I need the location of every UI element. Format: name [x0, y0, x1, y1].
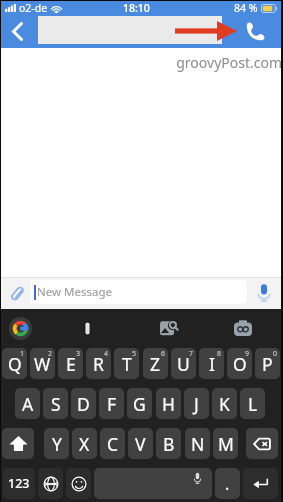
button[interactable]: M	[213, 428, 238, 459]
button[interactable]: W	[30, 348, 55, 379]
button[interactable]	[38, 16, 222, 44]
button[interactable]: K	[212, 388, 237, 419]
staticText: Z	[150, 352, 161, 376]
staticText: A	[22, 392, 34, 416]
staticText: X	[79, 432, 90, 456]
staticText: U	[177, 352, 190, 376]
staticText: 3	[76, 349, 81, 359]
button[interactable]: U	[171, 348, 196, 379]
staticText: 9	[245, 349, 250, 359]
button[interactable]: 123	[3, 468, 35, 499]
button[interactable]: Image search	[153, 312, 185, 344]
button[interactable]: Z	[143, 348, 168, 379]
staticText: B	[163, 432, 175, 456]
staticText: C	[107, 432, 119, 456]
button[interactable]: Emoji	[66, 468, 91, 499]
button[interactable]: Attach file	[3, 279, 31, 307]
staticText: 1	[20, 349, 25, 359]
button[interactable]: G	[127, 388, 152, 419]
staticText: M	[218, 432, 234, 456]
staticText: 84 %	[234, 1, 258, 15]
staticText: J	[194, 392, 199, 416]
button[interactable]: I	[199, 348, 224, 379]
button[interactable]: A	[15, 388, 40, 419]
staticText: groovyPost.com	[176, 53, 282, 72]
staticText: L	[248, 392, 258, 416]
staticText: 0	[273, 349, 278, 359]
staticText: F	[107, 392, 117, 416]
button[interactable]: R	[86, 348, 111, 379]
staticText: 4	[104, 349, 109, 359]
button[interactable]: E	[58, 348, 83, 379]
button[interactable]: Back	[1, 16, 33, 46]
staticText: S	[51, 392, 61, 416]
button[interactable]: Y	[44, 428, 69, 459]
staticText: O	[233, 352, 247, 376]
button[interactable]: T	[114, 348, 139, 379]
button[interactable]: Clipboard	[71, 312, 103, 344]
button[interactable]: S	[43, 388, 68, 419]
button[interactable]: Space	[94, 468, 212, 499]
staticText: New Message	[37, 284, 112, 300]
staticText: G	[133, 392, 146, 416]
staticText: 6	[161, 349, 166, 359]
button[interactable]: V	[128, 428, 153, 459]
button[interactable]: D	[71, 388, 96, 419]
button[interactable]: P	[255, 348, 280, 379]
staticText: 2	[48, 349, 53, 359]
button[interactable]: J	[184, 388, 209, 419]
staticText: P	[262, 352, 273, 376]
button[interactable]: L	[240, 388, 265, 419]
button[interactable]: Call	[239, 16, 271, 46]
staticText: o2-de	[19, 1, 48, 15]
button[interactable]: Voice input	[250, 278, 278, 306]
button[interactable]: B	[156, 428, 181, 459]
button[interactable]: GIF	[227, 312, 259, 344]
staticText: V	[135, 432, 146, 456]
button[interactable]: Shift	[2, 428, 34, 459]
staticText: N	[191, 432, 205, 456]
button[interactable]: New Message	[30, 280, 247, 304]
button[interactable]: Q	[2, 348, 27, 379]
button[interactable]: O	[227, 348, 252, 379]
button[interactable]: Google search	[7, 315, 33, 341]
staticText: 18:10	[123, 1, 150, 15]
button[interactable]: Backspace	[246, 428, 278, 459]
button[interactable]: C	[100, 428, 125, 459]
button[interactable]: .	[215, 468, 240, 499]
staticText: 8	[217, 349, 222, 359]
button[interactable]: F	[99, 388, 124, 419]
staticText: E	[66, 352, 76, 376]
staticText: R	[93, 352, 104, 376]
staticText: T	[122, 352, 132, 376]
staticText: Q	[8, 352, 22, 376]
staticText: 123	[8, 475, 30, 492]
staticText: I	[209, 352, 215, 376]
button[interactable]: Change language	[38, 468, 63, 499]
button[interactable]: X	[72, 428, 97, 459]
staticText: H	[162, 392, 175, 416]
staticText: 5	[132, 349, 137, 359]
staticText: K	[219, 392, 230, 416]
button[interactable]: H	[156, 388, 181, 419]
staticText: .	[225, 473, 230, 495]
staticText: Y	[52, 432, 62, 456]
staticText: W	[34, 352, 51, 376]
button[interactable]: N	[185, 428, 210, 459]
staticText: 7	[189, 349, 194, 359]
staticText: D	[77, 392, 90, 416]
button[interactable]: Enter	[243, 468, 278, 499]
